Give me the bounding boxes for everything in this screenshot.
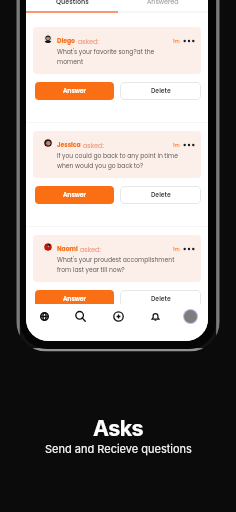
staticText: Send and Recieve questions bbox=[45, 442, 192, 455]
staticText: asked: bbox=[80, 245, 101, 254]
button[interactable]: Questions bbox=[26, 0, 118, 11]
staticText: Delete bbox=[151, 191, 171, 200]
staticText: What's your proudest accomplishment from… bbox=[57, 256, 200, 274]
staticText: Delete bbox=[151, 87, 171, 96]
button[interactable]: Delete bbox=[120, 82, 201, 100]
staticText: Answer bbox=[63, 87, 87, 96]
staticText: Answer bbox=[63, 191, 87, 200]
staticText: 1m bbox=[173, 246, 180, 253]
button[interactable]: More options bbox=[183, 139, 195, 151]
staticText: Answered bbox=[147, 0, 179, 6]
button[interactable]: More options bbox=[183, 243, 195, 255]
button[interactable]: Delete bbox=[120, 186, 201, 204]
staticText: 1m bbox=[173, 142, 180, 149]
staticText: asked: bbox=[78, 37, 99, 46]
button[interactable]: Explore bbox=[35, 307, 53, 325]
staticText: Asks bbox=[93, 415, 143, 441]
button[interactable]: Profile bbox=[181, 307, 199, 325]
staticText: Diego bbox=[57, 37, 76, 46]
button[interactable]: Answer bbox=[35, 82, 114, 100]
button[interactable]: Search bbox=[71, 307, 89, 325]
button[interactable]: Add bbox=[109, 307, 127, 325]
staticText: Questions bbox=[56, 0, 89, 6]
staticText: 1m bbox=[173, 38, 180, 45]
button[interactable]: More options bbox=[183, 35, 195, 47]
staticText: asked: bbox=[83, 141, 104, 150]
button[interactable]: Answer bbox=[35, 186, 114, 204]
staticText: Naomi bbox=[57, 245, 78, 254]
staticText: Delete bbox=[151, 295, 171, 304]
button[interactable]: Delete bbox=[120, 290, 201, 308]
button[interactable]: Notifications bbox=[146, 307, 164, 325]
button[interactable]: Answered bbox=[118, 0, 208, 11]
button[interactable]: Answer bbox=[35, 290, 114, 308]
staticText: If you could go back to any point in tim… bbox=[57, 152, 200, 170]
staticText: Answer bbox=[63, 295, 87, 304]
staticText: What's your favorite song?at the moment bbox=[57, 48, 200, 66]
staticText: Jessica bbox=[57, 141, 81, 150]
